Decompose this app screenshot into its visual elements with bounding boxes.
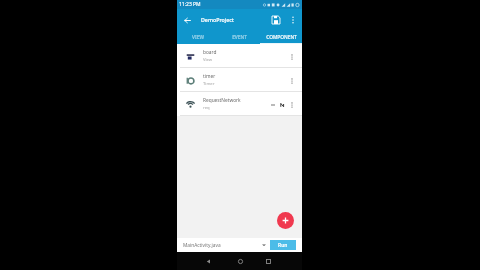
button[interactable]: Edit (277, 100, 286, 109)
staticText: DemoProject (201, 16, 234, 23)
staticText: req (203, 105, 210, 111)
staticText: EVENT (232, 34, 247, 41)
button[interactable]: COMPONENT (260, 30, 302, 44)
button[interactable]: Options (286, 75, 297, 86)
staticText: 11:23 PM (179, 1, 201, 8)
button[interactable]: More options (285, 12, 301, 28)
button[interactable]: EVENT (218, 30, 260, 44)
staticText: VIEW (192, 34, 204, 41)
button[interactable]: board (177, 44, 302, 68)
button[interactable]: Run (270, 240, 296, 250)
staticText: board (203, 49, 217, 56)
staticText: Run (278, 242, 288, 249)
button[interactable]: Navigate up (177, 10, 197, 30)
button[interactable]: Home (236, 257, 244, 265)
button[interactable]: MainActivity.java (177, 238, 270, 252)
button[interactable]: timer (177, 68, 302, 92)
staticText: timer (203, 73, 216, 80)
button[interactable]: RequestNetwork (177, 92, 302, 116)
button[interactable]: VIEW (177, 30, 218, 44)
staticText: RequestNetwork (203, 97, 241, 104)
button[interactable]: Back (204, 257, 212, 265)
staticText: View (203, 57, 213, 63)
button[interactable]: Options (286, 51, 297, 62)
staticText: Timer (203, 81, 215, 87)
staticText: COMPONENT (266, 34, 297, 41)
staticText: MainActivity.java (183, 242, 221, 249)
button[interactable]: Save (267, 11, 285, 29)
button[interactable]: Add component (277, 212, 294, 229)
button[interactable]: Options (286, 99, 297, 110)
button[interactable]: Recent apps (264, 257, 272, 265)
button[interactable]: Remove (268, 100, 277, 109)
